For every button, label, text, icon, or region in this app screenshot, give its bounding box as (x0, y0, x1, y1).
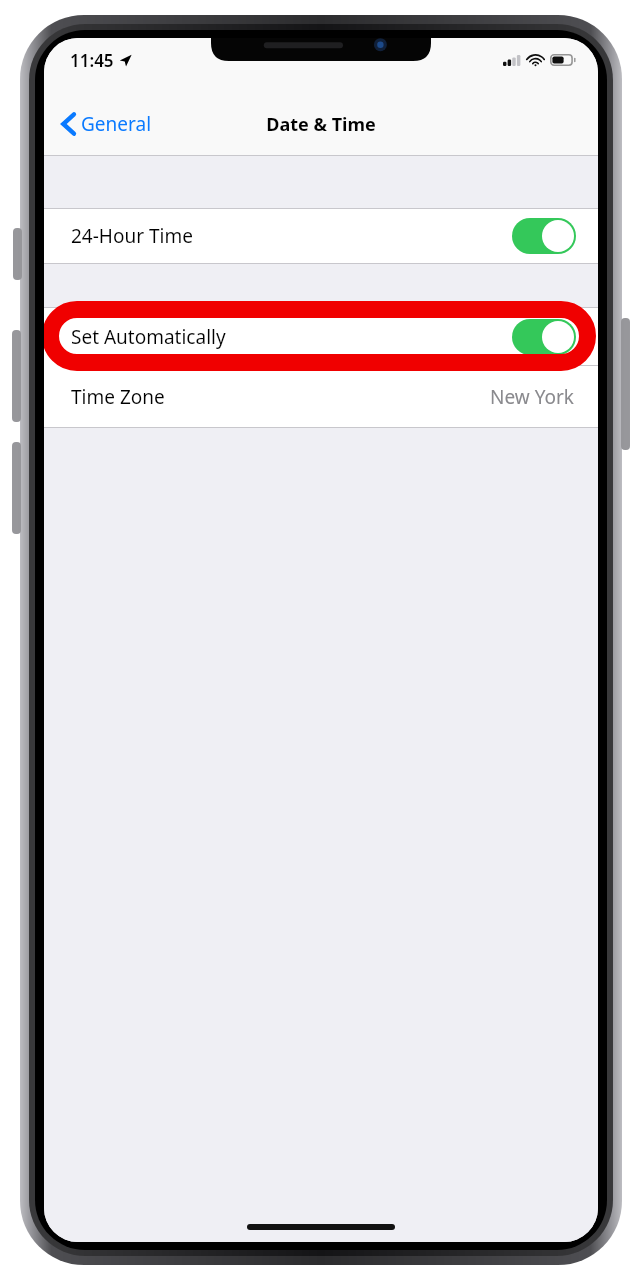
button[interactable]: 24-Hour Time (44, 209, 598, 263)
button[interactable]: Toggle on (512, 319, 576, 355)
button[interactable]: Set Automatically (44, 308, 598, 365)
button[interactable]: Toggle on (512, 218, 576, 254)
staticText: New York (490, 384, 574, 410)
staticText: 24-Hour Time (71, 223, 193, 249)
staticText: General (81, 111, 152, 137)
staticText: Set Automatically (71, 324, 226, 350)
button[interactable]: General (58, 107, 156, 141)
button[interactable]: Time Zone (44, 366, 598, 427)
staticText: 11:45 (70, 49, 114, 72)
staticText: Time Zone (71, 384, 165, 410)
staticText: Date & Time (266, 112, 376, 137)
